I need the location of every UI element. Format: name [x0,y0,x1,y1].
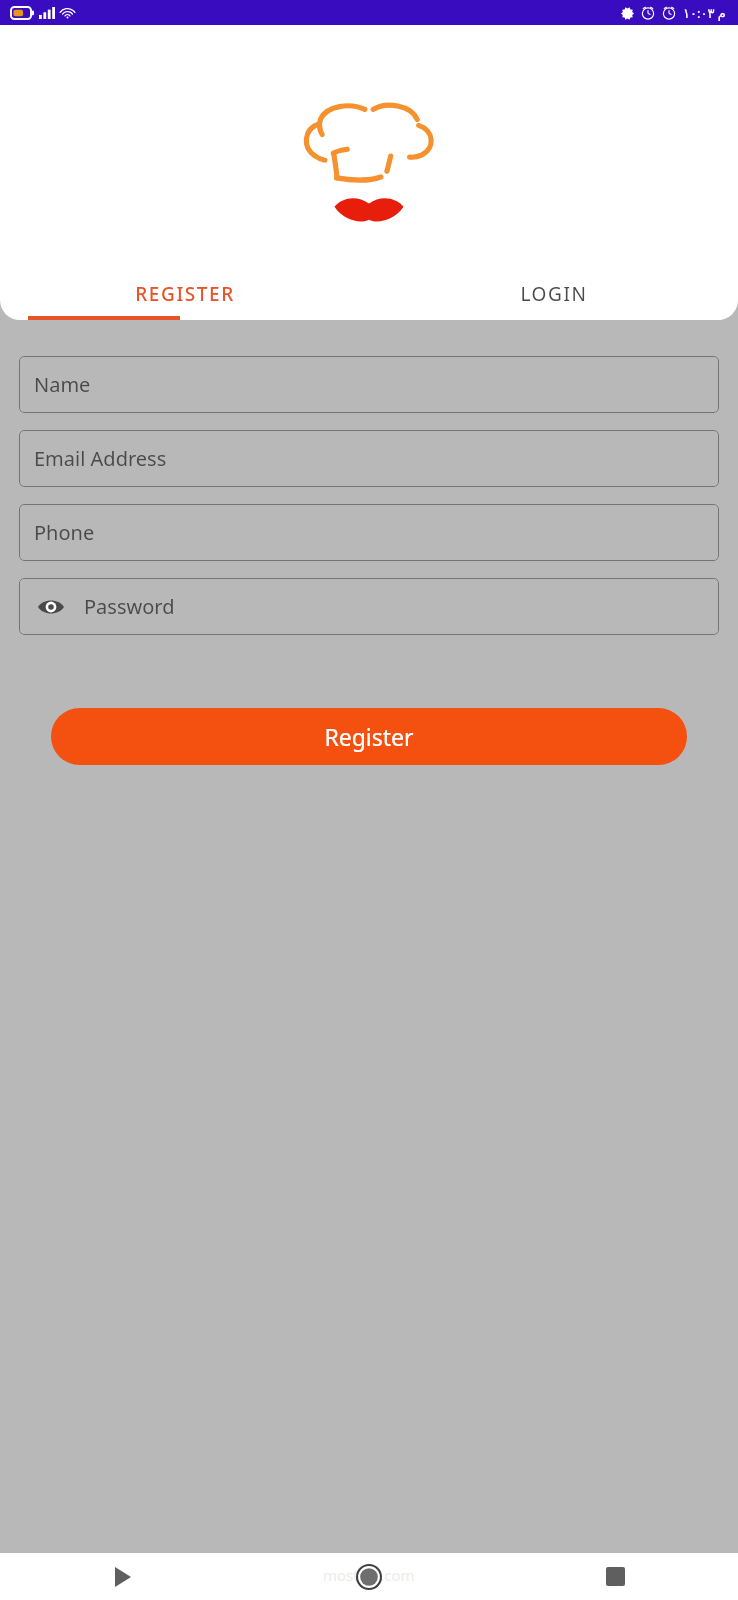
staticText: mostaql.com [323,1565,415,1585]
button[interactable]: Show password [19,578,719,635]
button[interactable]: Phone [19,504,719,561]
button[interactable]: Home [246,1553,492,1600]
staticText: Name [34,371,91,398]
staticText: REGISTER [135,281,235,307]
staticText: Register [324,721,414,752]
button[interactable]: Show password [34,590,68,624]
button[interactable]: Register [51,708,687,765]
button[interactable]: Email Address [19,430,719,487]
button[interactable]: Recents [492,1553,738,1600]
button[interactable]: Back [0,1553,246,1600]
staticText: Password [84,593,175,620]
staticText: م ١٠:٠٣ [683,4,726,22]
staticText: Phone [34,519,95,546]
button[interactable]: Name [19,356,719,413]
button[interactable]: LOGIN [369,268,738,320]
staticText: Email Address [34,445,167,472]
staticText: LOGIN [520,281,588,307]
button[interactable]: REGISTER [0,268,369,320]
